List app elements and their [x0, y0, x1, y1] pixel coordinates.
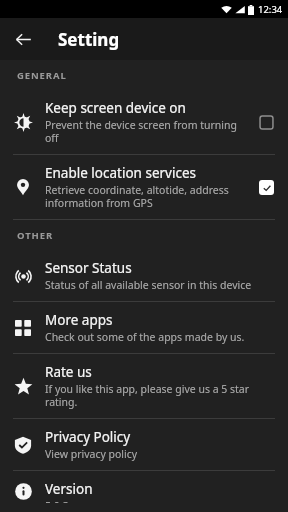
button[interactable]: Disabled checkbox	[255, 111, 277, 133]
staticText: 12:34	[258, 3, 283, 16]
staticText: If you like this app, please give us a 5…	[45, 382, 277, 409]
button[interactable]: Enable location services	[0, 155, 288, 219]
button[interactable]: Keep screen device on	[0, 90, 288, 154]
button[interactable]: Back	[9, 25, 37, 53]
staticText: Setting	[58, 28, 120, 51]
staticText: Keep screen device on	[45, 99, 186, 117]
button[interactable]: Rate us	[0, 354, 288, 418]
staticText: Check out some of the apps made by us.	[45, 330, 245, 344]
staticText: View privacy policy	[45, 447, 138, 461]
button[interactable]: Privacy Policy	[0, 419, 288, 470]
button[interactable]: Sensor Status	[0, 250, 288, 301]
staticText: More apps	[45, 311, 113, 329]
staticText: Version	[45, 480, 93, 498]
staticText: Privacy Policy	[45, 428, 131, 446]
staticText: Rate us	[45, 363, 92, 381]
staticText: OTHER	[17, 229, 54, 242]
staticText: Retrieve coordinate, altotide, address i…	[45, 183, 247, 210]
staticText: Prevent the device screen from turning o…	[45, 118, 247, 145]
staticText: Status of all available sensor in this d…	[45, 278, 252, 292]
staticText: 5.0.3	[45, 499, 69, 503]
button[interactable]: Version	[0, 471, 288, 512]
staticText: Sensor Status	[45, 259, 132, 277]
button[interactable]: More apps	[0, 302, 288, 353]
staticText: GENERAL	[17, 69, 67, 82]
button[interactable]: Enabled checkbox	[255, 176, 277, 198]
staticText: Enable location services	[45, 164, 196, 182]
